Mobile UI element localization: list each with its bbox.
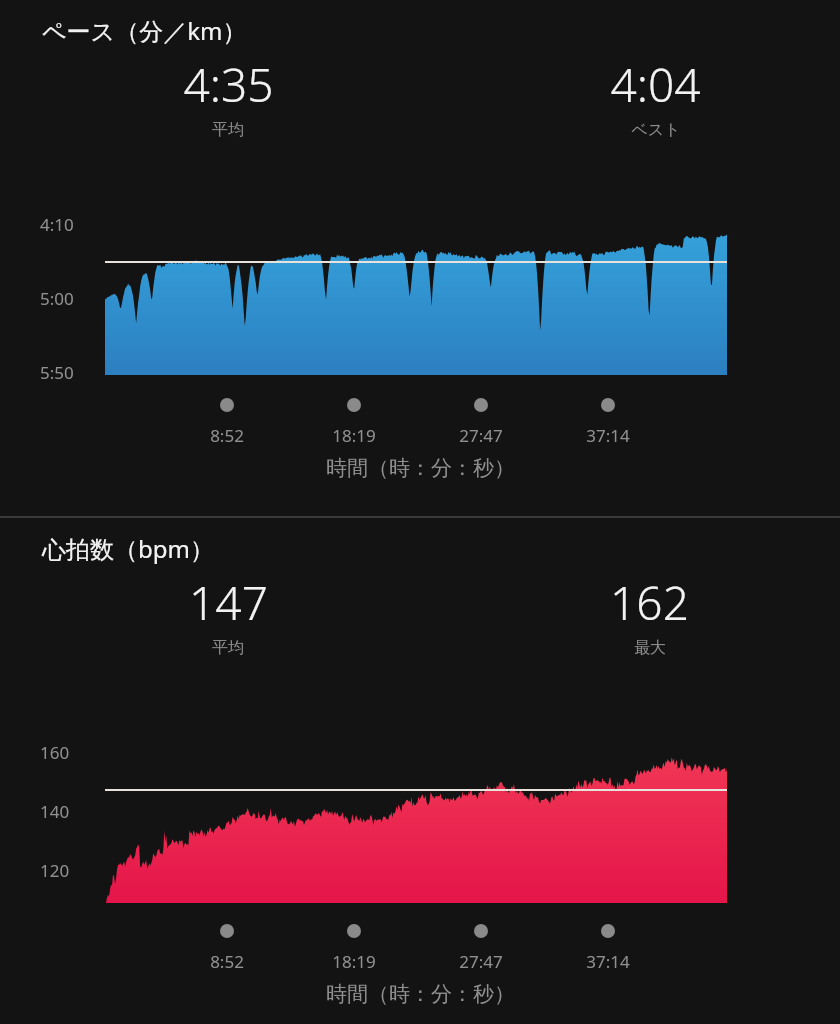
button[interactable]: 4:35 bbox=[0, 53, 456, 140]
staticText: 時間（時：分：秒） bbox=[326, 981, 515, 1007]
button[interactable]: ペース（分／km） bbox=[0, 0, 840, 516]
staticText: 18:19 bbox=[332, 424, 376, 447]
button[interactable]: 4:04 bbox=[610, 53, 701, 140]
other: ペース チャート bbox=[0, 0, 840, 516]
staticText: 8:52 bbox=[210, 424, 244, 447]
staticText: 平均 bbox=[212, 120, 244, 140]
staticText: 最大 bbox=[634, 638, 666, 658]
staticText: ベスト bbox=[631, 120, 681, 140]
staticText: 147 bbox=[189, 571, 268, 634]
button[interactable]: 心拍数（bpm） bbox=[0, 518, 840, 1024]
staticText: 27:47 bbox=[459, 950, 503, 973]
button[interactable]: 147 bbox=[0, 571, 456, 658]
staticText: 5:00 bbox=[40, 287, 74, 310]
staticText: 時間（時：分：秒） bbox=[326, 455, 515, 481]
staticText: 8:52 bbox=[210, 950, 244, 973]
staticText: ペース（分／km） bbox=[42, 14, 247, 47]
staticText: 37:14 bbox=[586, 424, 630, 447]
staticText: 4:35 bbox=[183, 53, 274, 116]
staticText: 5:50 bbox=[40, 361, 74, 384]
staticText: 平均 bbox=[212, 638, 244, 658]
other: 心拍数 チャート bbox=[0, 518, 840, 1024]
staticText: 心拍数（bpm） bbox=[42, 532, 214, 565]
staticText: 120 bbox=[40, 859, 70, 882]
staticText: 4:04 bbox=[610, 53, 701, 116]
staticText: 162 bbox=[610, 571, 689, 634]
staticText: 160 bbox=[40, 741, 70, 764]
staticText: 18:19 bbox=[332, 950, 376, 973]
staticText: 37:14 bbox=[586, 950, 630, 973]
staticText: 27:47 bbox=[459, 424, 503, 447]
staticText: 4:10 bbox=[40, 213, 74, 236]
button[interactable]: 162 bbox=[610, 571, 689, 658]
staticText: 140 bbox=[40, 800, 70, 823]
